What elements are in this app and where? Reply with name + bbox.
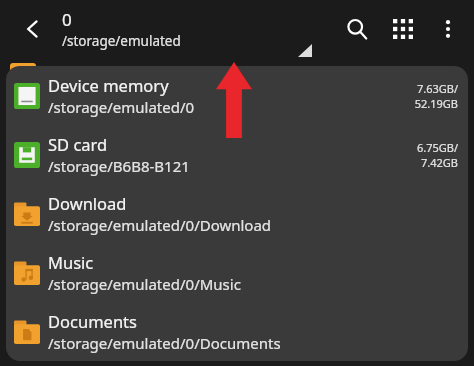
staticText: Music [48, 251, 94, 273]
staticText: Documents [48, 310, 137, 332]
button[interactable]: Search [334, 6, 380, 52]
button[interactable]: Music [6, 243, 468, 302]
staticText: SD card [48, 133, 108, 155]
staticText: 7.63GB/ [416, 81, 458, 96]
staticText: Download [48, 192, 127, 214]
staticText: 6.75GB/ [416, 140, 458, 155]
staticText: Device memory [48, 74, 169, 96]
button[interactable]: Download [6, 184, 468, 243]
staticText: 7.42GB [421, 155, 458, 170]
button[interactable]: Device memory [6, 66, 468, 125]
staticText: 0 [62, 8, 72, 31]
button[interactable]: Grid view [380, 6, 426, 52]
button[interactable]: SD card [6, 125, 468, 184]
button[interactable]: Back [14, 10, 52, 48]
button[interactable]: Documents [6, 302, 468, 361]
staticText: /storage/emulated [62, 32, 181, 50]
staticText: /storage/B6B8-B121 [48, 156, 190, 176]
button[interactable]: 0 [62, 8, 181, 50]
staticText: /storage/emulated/0/Music [48, 274, 241, 294]
staticText: /storage/emulated/0/Download [48, 215, 272, 235]
staticText: /storage/emulated/0 [48, 97, 195, 117]
staticText: /storage/emulated/0/Documents [48, 333, 281, 353]
button[interactable]: More options [426, 7, 470, 51]
staticText: 52.19GB [414, 96, 458, 111]
